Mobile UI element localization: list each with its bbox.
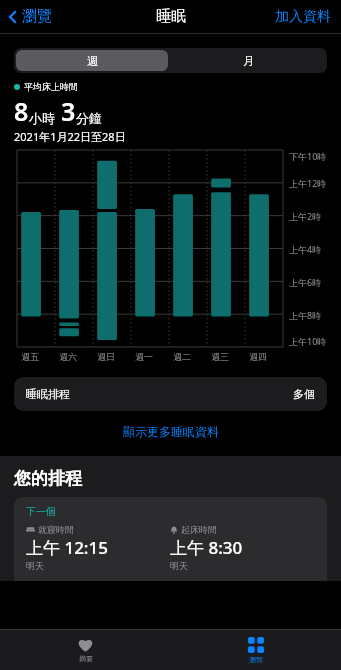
- staticText: 週六: [59, 351, 77, 362]
- staticText: 瀏覽: [22, 7, 52, 26]
- staticText: 週日: [97, 351, 115, 362]
- staticText: 週: [87, 54, 98, 68]
- staticText: 週五: [21, 351, 39, 362]
- staticText: 睡眠: [156, 7, 186, 26]
- staticText: 分鐘: [76, 110, 102, 126]
- button[interactable]: 加入資料: [265, 4, 341, 30]
- staticText: 上午2時: [289, 210, 322, 222]
- staticText: 您的排程: [14, 468, 82, 489]
- staticText: 睡眠排程: [26, 387, 70, 401]
- button[interactable]: 瀏覽: [0, 3, 60, 30]
- staticText: 多個: [293, 387, 315, 401]
- staticText: 小時: [29, 110, 55, 126]
- button[interactable]: 顯示更多睡眠資料: [111, 421, 231, 442]
- button[interactable]: 下一個: [14, 497, 327, 581]
- staticText: 明天: [170, 560, 188, 571]
- button[interactable]: 摘要: [0, 630, 170, 670]
- staticText: 下午10時: [289, 150, 327, 162]
- button[interactable]: 月: [170, 48, 327, 73]
- staticText: 上午4時: [289, 243, 322, 255]
- staticText: 平均床上時間: [24, 81, 78, 92]
- staticText: 明天: [26, 560, 44, 571]
- staticText: 摘要: [79, 654, 93, 663]
- staticText: 瀏覽: [249, 655, 263, 664]
- staticText: 下一個: [26, 505, 56, 518]
- staticText: 2021年1月22日至28日: [14, 129, 126, 144]
- button[interactable]: 瀏覽: [170, 630, 341, 670]
- staticText: 上午12時: [289, 177, 327, 189]
- staticText: 3: [61, 94, 76, 128]
- staticText: 起床時間: [181, 524, 217, 535]
- staticText: 顯示更多睡眠資料: [123, 424, 219, 439]
- staticText: 週二: [173, 351, 191, 362]
- staticText: 上午6時: [289, 276, 322, 288]
- staticText: 就寢時間: [38, 524, 74, 535]
- staticText: 週四: [249, 351, 267, 362]
- staticText: 月: [243, 54, 254, 68]
- staticText: 上午8時: [289, 309, 322, 321]
- staticText: 週一: [135, 351, 153, 362]
- staticText: 加入資料: [275, 8, 331, 26]
- staticText: 週三: [211, 351, 229, 362]
- staticText: 上午 8:30: [170, 536, 243, 559]
- button[interactable]: 睡眠排程: [14, 377, 327, 411]
- staticText: 上午10時: [289, 335, 327, 347]
- button[interactable]: 週: [16, 50, 168, 71]
- staticText: 上午 12:15: [26, 536, 108, 559]
- staticText: 8: [14, 94, 29, 128]
